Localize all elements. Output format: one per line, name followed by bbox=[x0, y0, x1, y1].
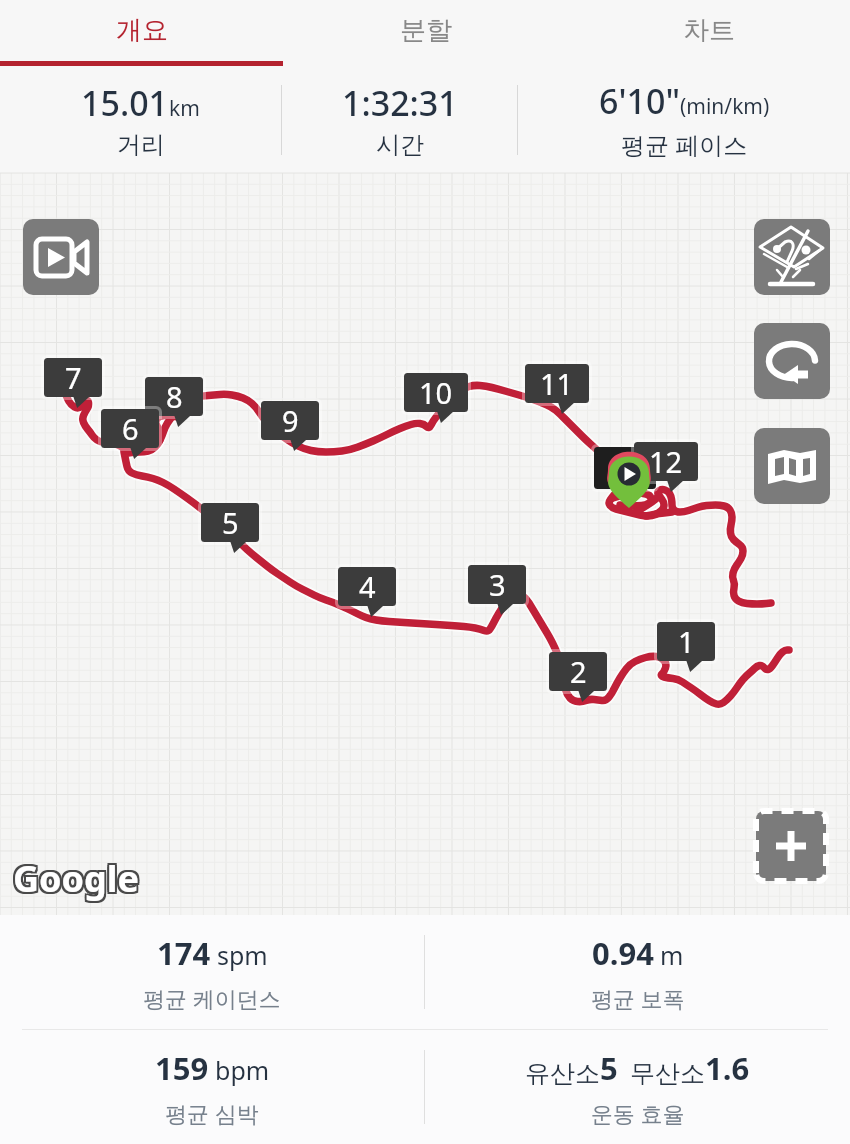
staticText: Google bbox=[13, 854, 140, 903]
button[interactable]: Kilometre 4 marker bbox=[338, 567, 396, 606]
staticText: 1.6 bbox=[705, 1047, 750, 1089]
button[interactable]: Elevation profile bbox=[754, 219, 830, 295]
staticText: 운동 효율 bbox=[591, 1098, 685, 1128]
staticText: 0.94 bbox=[592, 932, 654, 974]
button[interactable]: 개요 bbox=[0, 0, 284, 61]
button[interactable]: Kilometre 10 marker bbox=[404, 373, 468, 412]
staticText: 10 bbox=[419, 373, 453, 412]
staticText: km bbox=[169, 94, 200, 123]
staticText: 5 bbox=[600, 1047, 618, 1089]
button[interactable]: Kilometre 8 marker bbox=[145, 377, 203, 416]
staticText: 174 bbox=[157, 932, 211, 974]
staticText: 2 bbox=[570, 652, 587, 691]
staticText: Google bbox=[11, 854, 138, 903]
staticText: Google bbox=[13, 856, 140, 905]
staticText: spm bbox=[217, 938, 268, 972]
staticText: Google bbox=[11, 856, 138, 905]
staticText: 무산소 bbox=[630, 1058, 705, 1089]
staticText: 평균 보폭 bbox=[591, 983, 685, 1013]
button[interactable]: Replay route bbox=[754, 323, 830, 399]
button[interactable]: Kilometre 6 marker bbox=[101, 409, 159, 448]
button[interactable]: Kilometre 3 marker bbox=[468, 565, 526, 604]
staticText: 11 bbox=[540, 364, 574, 403]
button[interactable]: Map type bbox=[754, 428, 830, 504]
staticText: 1 bbox=[678, 622, 695, 661]
staticText: 4 bbox=[359, 567, 376, 606]
staticText: 12 bbox=[649, 442, 683, 481]
staticText: m bbox=[660, 938, 684, 972]
button[interactable]: Kilometre 9 marker bbox=[261, 401, 319, 440]
staticText: 시간 bbox=[376, 130, 424, 160]
staticText: 평균 케이던스 bbox=[143, 983, 281, 1013]
button[interactable]: Expand map bbox=[753, 808, 829, 884]
staticText: bpm bbox=[215, 1053, 270, 1087]
staticText: (min/km) bbox=[680, 92, 770, 121]
staticText: 분할 bbox=[400, 14, 452, 47]
staticText: 9 bbox=[282, 401, 299, 440]
staticText: 6 bbox=[122, 409, 139, 448]
button[interactable]: Kilometre 5 marker bbox=[201, 503, 259, 542]
button[interactable]: 분할 bbox=[284, 0, 567, 61]
button[interactable]: Kilometre 2 marker bbox=[549, 652, 607, 691]
button[interactable]: Kilometre 7 marker bbox=[44, 358, 102, 397]
staticText: 1:32:31 bbox=[342, 80, 458, 126]
staticText: 평균 심박 bbox=[165, 1098, 259, 1128]
staticText: 평균 페이스 bbox=[621, 128, 748, 161]
button[interactable]: 차트 bbox=[567, 0, 850, 61]
staticText: Google bbox=[15, 856, 142, 905]
staticText: Google bbox=[15, 852, 142, 901]
staticText: Google bbox=[13, 852, 140, 901]
button[interactable]: Video bbox=[23, 219, 99, 295]
button[interactable]: Kilometre 1 marker bbox=[657, 622, 715, 661]
staticText: 3 bbox=[489, 565, 506, 604]
staticText: 159 bbox=[155, 1047, 209, 1089]
staticText: 6'10" bbox=[599, 78, 680, 124]
staticText: 거리 bbox=[117, 130, 165, 160]
staticText: 8 bbox=[166, 377, 183, 416]
button[interactable]: Kilometre 11 marker bbox=[525, 364, 589, 403]
button[interactable]: Kilometre 12 marker bbox=[634, 442, 698, 481]
staticText: 유산소 bbox=[525, 1058, 600, 1089]
staticText: 7 bbox=[65, 358, 82, 397]
staticText: 차트 bbox=[683, 14, 735, 47]
staticText: Google bbox=[11, 852, 138, 901]
staticText: 5 bbox=[222, 503, 239, 542]
staticText: Google bbox=[15, 854, 142, 903]
staticText: 개요 bbox=[116, 14, 168, 47]
staticText: 15.01 bbox=[81, 80, 169, 126]
